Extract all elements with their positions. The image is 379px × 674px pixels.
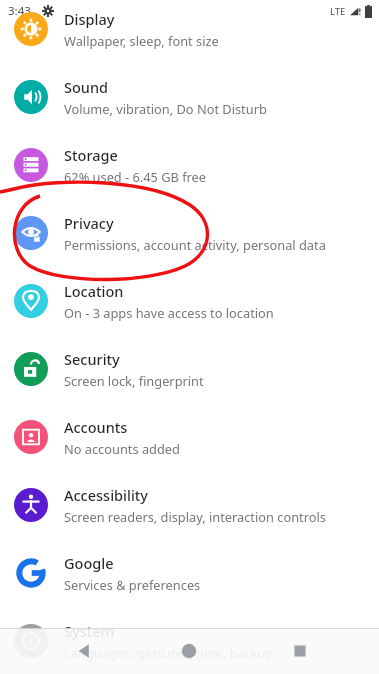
staticText: 3:43	[8, 3, 31, 19]
staticText: No accounts added	[64, 440, 180, 457]
staticText: Display	[64, 9, 115, 29]
button[interactable]: System	[0, 607, 379, 674]
staticText: Wallpaper, sleep, font size	[64, 32, 219, 49]
button[interactable]: Location	[0, 267, 379, 335]
button[interactable]: Security	[0, 335, 379, 403]
staticText: Privacy	[64, 213, 114, 233]
staticText: Storage	[64, 145, 118, 165]
staticText: Screen readers, display, interaction con…	[64, 508, 326, 525]
staticText: Accessibility	[64, 485, 149, 505]
staticText: Volume, vibration, Do Not Disturb	[64, 100, 267, 117]
staticText: Location	[64, 281, 124, 301]
staticText: LTE	[330, 5, 346, 18]
button[interactable]: Home	[177, 639, 201, 663]
staticText: Permissions, account activity, personal …	[64, 236, 326, 253]
staticText: Accounts	[64, 417, 128, 437]
staticText: Sound	[64, 77, 109, 97]
button[interactable]: Storage	[0, 131, 379, 199]
staticText: Screen lock, fingerprint	[64, 372, 204, 389]
button[interactable]: Back	[72, 639, 96, 663]
staticText: Services & preferences	[64, 576, 201, 593]
button[interactable]: Google	[0, 539, 379, 607]
staticText: Languages, gestures, time, backup	[64, 644, 274, 661]
button[interactable]: Accessibility	[0, 471, 379, 539]
button[interactable]: Recent apps	[288, 639, 312, 663]
staticText: Security	[64, 349, 120, 369]
button[interactable]: Privacy	[0, 199, 379, 267]
staticText: On - 3 apps have access to location	[64, 304, 274, 321]
staticText: 62% used - 6.45 GB free	[64, 168, 207, 185]
staticText: Google	[64, 553, 114, 573]
staticText: System	[64, 621, 115, 641]
button[interactable]: Display	[0, 0, 379, 63]
button[interactable]: Accounts	[0, 403, 379, 471]
button[interactable]: Sound	[0, 63, 379, 131]
